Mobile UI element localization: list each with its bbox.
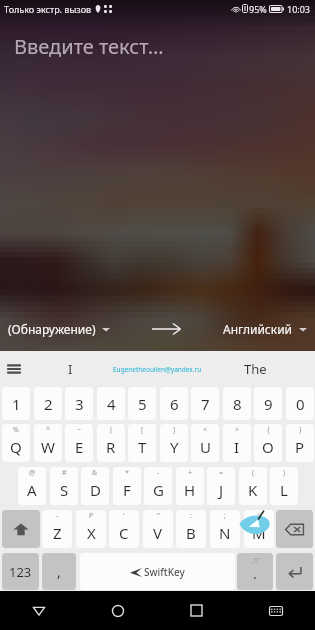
button[interactable]: ) bbox=[270, 467, 298, 505]
button[interactable]: Backspace bbox=[276, 510, 313, 548]
button[interactable]: | bbox=[97, 424, 125, 462]
staticText: " bbox=[157, 511, 160, 521]
staticText: 10:03 bbox=[287, 3, 311, 15]
staticText: > bbox=[235, 425, 240, 435]
button[interactable]: Enter bbox=[276, 553, 313, 590]
button[interactable]: 6 bbox=[160, 387, 188, 420]
button[interactable]: 2 bbox=[34, 387, 62, 420]
staticText: H bbox=[184, 480, 196, 500]
button[interactable]: ; bbox=[210, 510, 240, 548]
button[interactable]: < bbox=[191, 424, 219, 462]
staticText: @ bbox=[29, 468, 36, 478]
staticText: SwiftKey bbox=[144, 565, 185, 579]
button[interactable]: ~ bbox=[65, 424, 93, 462]
button[interactable]: [ bbox=[128, 424, 156, 462]
button[interactable]: P bbox=[76, 510, 106, 548]
staticText: 0 bbox=[296, 394, 305, 414]
button[interactable]: 5 bbox=[128, 387, 156, 420]
button[interactable]: * bbox=[113, 467, 141, 505]
button[interactable]: 7 bbox=[191, 387, 219, 420]
staticText: W bbox=[41, 437, 55, 457]
staticText: ! bbox=[258, 511, 260, 521]
staticText: P bbox=[89, 511, 94, 521]
button[interactable]: - bbox=[42, 510, 72, 548]
staticText: 7 bbox=[201, 394, 210, 414]
button[interactable]: Hide keyboard bbox=[236, 591, 315, 630]
button[interactable]: Back bbox=[0, 591, 78, 630]
button[interactable]: ( bbox=[239, 467, 267, 505]
staticText: (Обнаружение) bbox=[8, 321, 96, 337]
button[interactable]: & bbox=[81, 467, 109, 505]
button[interactable]: 1 bbox=[2, 387, 30, 420]
button[interactable]: = bbox=[207, 467, 235, 505]
button[interactable]: Space bbox=[80, 553, 235, 590]
button[interactable]: > bbox=[223, 424, 251, 462]
staticText: Введите текст… bbox=[14, 33, 164, 60]
staticText: # bbox=[62, 468, 67, 478]
button[interactable]: Eugenetheoulien@yandex.ru bbox=[110, 351, 205, 387]
staticText: 5 bbox=[138, 394, 147, 414]
button[interactable]: @ bbox=[18, 467, 46, 505]
staticText: * bbox=[125, 468, 129, 478]
staticText: ' bbox=[123, 511, 125, 521]
button[interactable]: ,!? bbox=[237, 553, 273, 590]
button[interactable]: Английский bbox=[223, 315, 307, 343]
staticText: ,!? bbox=[252, 556, 259, 566]
staticText: V bbox=[153, 523, 163, 543]
button[interactable]: : bbox=[176, 510, 206, 548]
staticText: : bbox=[190, 511, 192, 521]
staticText: 3 bbox=[75, 394, 84, 414]
staticText: C bbox=[119, 523, 129, 543]
button[interactable]: I bbox=[40, 351, 100, 387]
staticText: ^ bbox=[46, 425, 51, 435]
button[interactable]: , bbox=[42, 553, 76, 590]
staticText: + bbox=[188, 468, 193, 478]
button[interactable]: - bbox=[144, 467, 172, 505]
staticText: X bbox=[87, 523, 96, 543]
button[interactable]: # bbox=[50, 467, 78, 505]
button[interactable]: ] bbox=[160, 424, 188, 462]
staticText: 4 bbox=[107, 394, 116, 414]
button[interactable]: ! bbox=[244, 510, 274, 548]
staticText: D bbox=[90, 480, 101, 500]
button[interactable]: { bbox=[254, 424, 282, 462]
staticText: The bbox=[244, 360, 267, 378]
button[interactable]: } bbox=[286, 424, 314, 462]
staticText: { bbox=[267, 425, 270, 435]
staticText: 6 bbox=[170, 394, 179, 414]
button[interactable]: 9 bbox=[254, 387, 282, 420]
staticText: Eugenetheoulien@yandex.ru bbox=[113, 365, 202, 374]
button[interactable]: (Обнаружение) bbox=[8, 315, 110, 343]
staticText: M bbox=[252, 523, 266, 543]
button[interactable]: " bbox=[143, 510, 173, 548]
staticText: O bbox=[262, 437, 274, 457]
button[interactable]: Shift bbox=[2, 510, 40, 548]
staticText: R bbox=[106, 437, 116, 457]
button[interactable]: % bbox=[2, 424, 30, 462]
staticText: Z bbox=[53, 523, 62, 543]
staticText: E bbox=[75, 437, 84, 457]
button[interactable]: + bbox=[176, 467, 204, 505]
staticText: - bbox=[157, 468, 160, 478]
button[interactable]: Home bbox=[78, 591, 157, 630]
button[interactable]: 4 bbox=[97, 387, 125, 420]
staticText: 123 bbox=[9, 563, 32, 581]
button[interactable]: ^ bbox=[34, 424, 62, 462]
staticText: N bbox=[219, 523, 231, 543]
button[interactable]: ' bbox=[109, 510, 139, 548]
button[interactable]: The bbox=[215, 351, 295, 387]
staticText: - bbox=[56, 511, 59, 521]
staticText: K bbox=[248, 480, 258, 500]
staticText: } bbox=[299, 425, 302, 435]
button[interactable]: Recent apps bbox=[157, 591, 236, 630]
staticText: Q bbox=[10, 437, 22, 457]
staticText: 1 bbox=[12, 394, 21, 414]
button[interactable]: 8 bbox=[223, 387, 251, 420]
staticText: I bbox=[68, 360, 73, 378]
button[interactable]: Keyboard menu bbox=[2, 351, 26, 387]
button[interactable]: 3 bbox=[65, 387, 93, 420]
button[interactable]: 123 bbox=[2, 553, 39, 590]
button[interactable]: 0 bbox=[286, 387, 314, 420]
staticText: 2 bbox=[44, 394, 53, 414]
staticText: & bbox=[92, 468, 98, 478]
